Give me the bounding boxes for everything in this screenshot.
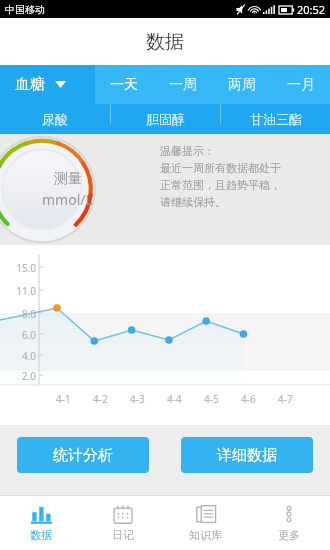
button[interactable]: 数据: [0, 496, 82, 550]
staticText: 4-7: [278, 392, 293, 406]
button[interactable]: 一天: [104, 65, 144, 104]
staticText: 更多: [278, 528, 300, 542]
staticText: 温馨提示：: [160, 144, 215, 158]
button[interactable]: 尿酸: [0, 104, 110, 134]
staticText: 详细数据: [217, 446, 277, 465]
staticText: 一月: [287, 76, 315, 94]
staticText: 15.0: [0, 261, 36, 275]
staticText: 4-5: [204, 392, 219, 406]
staticText: 数据: [146, 30, 184, 54]
staticText: 最近一周所有数据都处于: [160, 161, 281, 175]
staticText: 两周: [228, 76, 256, 94]
button[interactable]: 日记: [82, 496, 164, 550]
staticText: 11.0: [0, 284, 36, 298]
staticText: 数据: [30, 528, 52, 542]
button[interactable]: 一月: [281, 65, 321, 104]
staticText: 4-3: [130, 392, 145, 406]
staticText: 统计分析: [53, 446, 113, 465]
button[interactable]: 甘油三酯: [221, 104, 330, 134]
staticText: 2.0: [0, 369, 36, 383]
staticText: 一周: [169, 76, 197, 94]
button[interactable]: 统计分析: [17, 437, 149, 473]
staticText: 4.0: [0, 349, 36, 363]
staticText: 请继续保持。: [160, 195, 226, 209]
staticText: 知识库: [189, 528, 222, 542]
staticText: 4-2: [93, 392, 108, 406]
button[interactable]: 血糖: [0, 65, 95, 104]
button[interactable]: 两周: [222, 65, 262, 104]
staticText: 一天: [110, 76, 138, 94]
button[interactable]: 一周: [163, 65, 203, 104]
staticText: 尿酸: [42, 111, 68, 127]
staticText: 日记: [112, 528, 134, 542]
staticText: 血糖: [15, 75, 45, 94]
staticText: 测量: [54, 170, 82, 188]
staticText: 甘油三酯: [250, 111, 302, 127]
staticText: 4-4: [167, 392, 182, 406]
staticText: 正常范围，且趋势平稳，: [160, 178, 281, 192]
staticText: 20:52: [297, 2, 326, 17]
button[interactable]: 详细数据: [181, 437, 313, 473]
staticText: 中国移动: [5, 3, 45, 16]
staticText: 4-1: [56, 392, 71, 406]
staticText: 4-6: [241, 392, 256, 406]
staticText: 胆固醇: [146, 111, 185, 127]
staticText: 8.0: [0, 307, 36, 321]
button[interactable]: 知识库: [164, 496, 247, 550]
staticText: mmol/L: [42, 190, 93, 209]
button[interactable]: 胆固醇: [111, 104, 220, 134]
staticText: 6.0: [0, 328, 36, 342]
button[interactable]: 更多: [247, 496, 330, 550]
